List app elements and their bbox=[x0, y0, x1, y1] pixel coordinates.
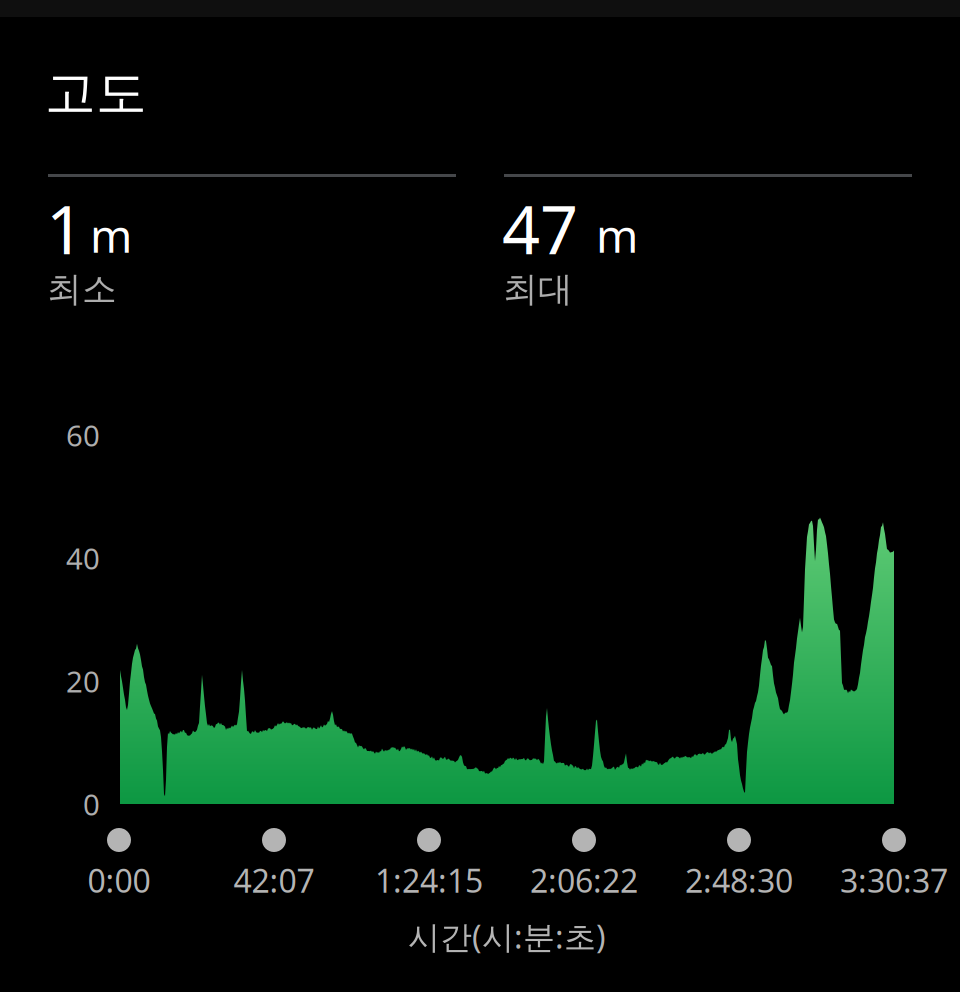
button[interactable]: 1:24:15 bbox=[309, 823, 549, 903]
staticText: 0 bbox=[83, 784, 100, 823]
button[interactable]: 47 bbox=[504, 174, 912, 314]
staticText: 2:48:30 bbox=[685, 859, 793, 901]
button[interactable]: 3:30:37 bbox=[774, 823, 960, 903]
staticText: 1 bbox=[46, 184, 84, 272]
staticText: 2:06:22 bbox=[530, 859, 638, 901]
staticText: m bbox=[90, 205, 132, 265]
button[interactable]: 42:07 bbox=[154, 823, 394, 903]
staticText: 42:07 bbox=[233, 859, 314, 901]
staticText: 40 bbox=[66, 538, 100, 577]
button[interactable]: 1 bbox=[48, 174, 456, 314]
staticText: 0:00 bbox=[87, 859, 150, 901]
staticText: m bbox=[596, 205, 638, 265]
staticText: 20 bbox=[66, 661, 100, 700]
staticText: 최대 bbox=[503, 268, 573, 311]
staticText: 60 bbox=[66, 415, 100, 454]
staticText: 1:24:15 bbox=[375, 859, 483, 901]
staticText: 고도 bbox=[45, 62, 147, 124]
button[interactable]: 고도 그래프 bbox=[120, 435, 894, 804]
button[interactable]: 0:00 bbox=[0, 823, 239, 903]
staticText: 47 bbox=[502, 184, 578, 272]
button[interactable]: 2:48:30 bbox=[619, 823, 859, 903]
staticText: 3:30:37 bbox=[840, 859, 948, 901]
button[interactable]: 2:06:22 bbox=[464, 823, 704, 903]
staticText: 시간(시:분:초) bbox=[408, 915, 606, 957]
staticText: 최소 bbox=[47, 268, 117, 311]
